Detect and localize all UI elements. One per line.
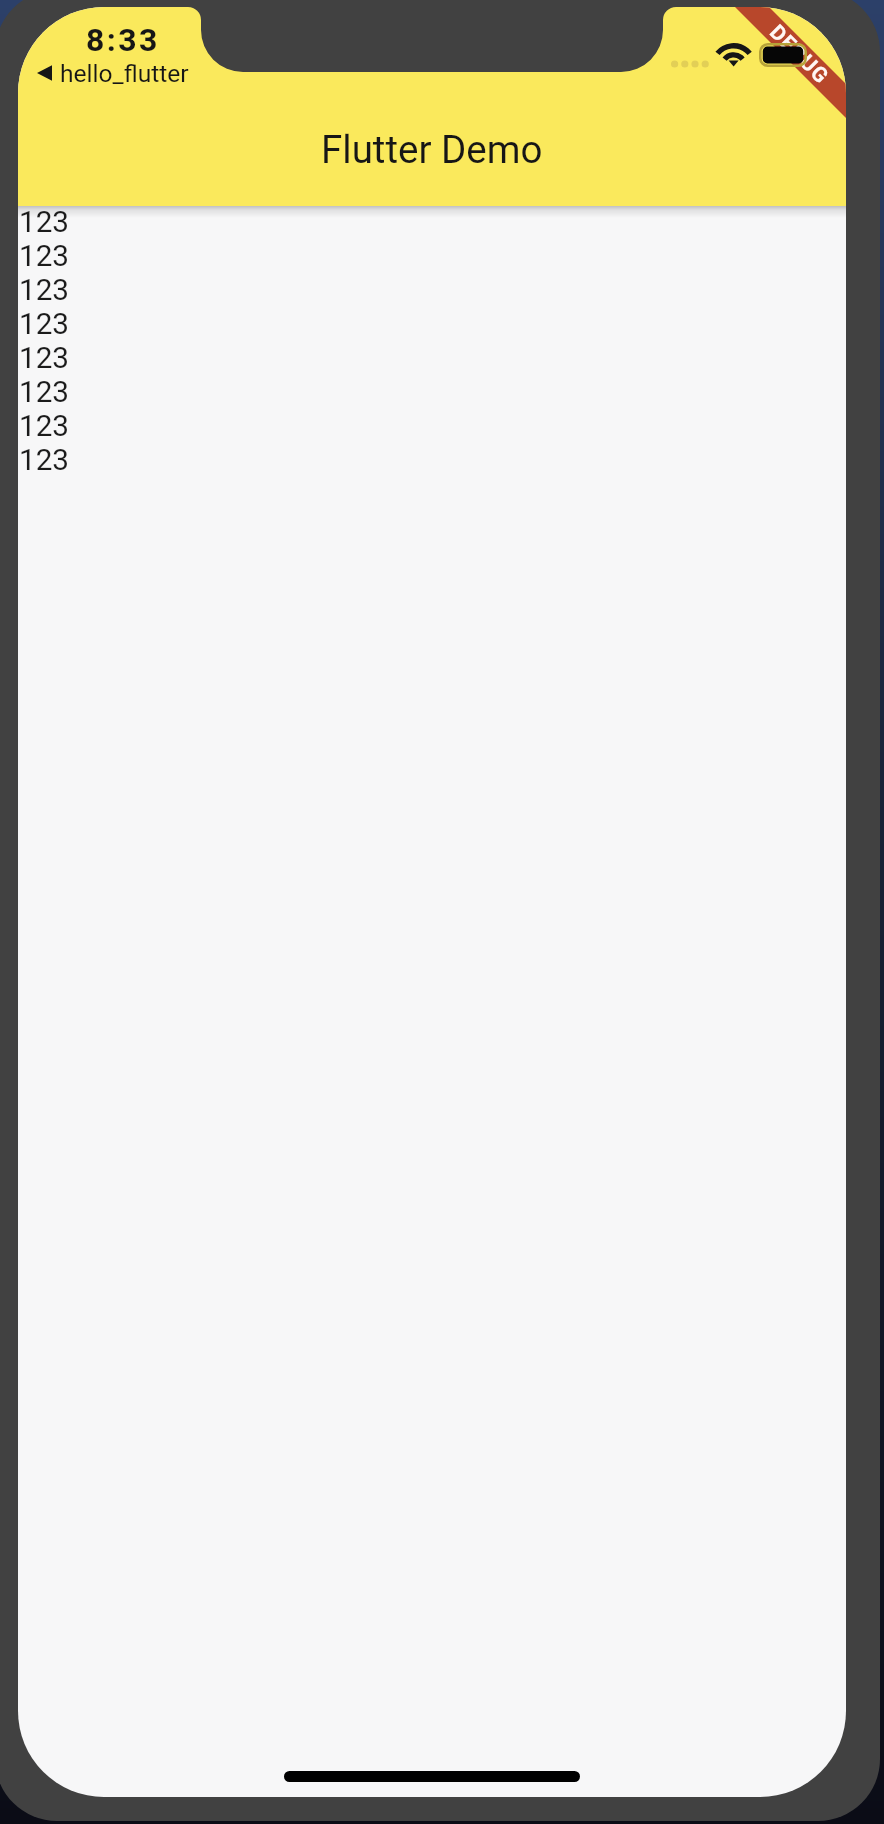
button[interactable]: 123: [18, 410, 846, 444]
other: Wi-Fi: [714, 41, 754, 69]
button[interactable]: 123: [18, 206, 846, 240]
staticText: hello_flutter: [60, 59, 189, 88]
staticText: 123: [19, 374, 70, 408]
button[interactable]: 123: [18, 240, 846, 274]
button[interactable]: 123: [18, 444, 846, 478]
staticText: 123: [19, 408, 70, 442]
staticText: Flutter Demo: [321, 127, 543, 172]
staticText: 123: [19, 272, 70, 306]
other: Battery: [759, 43, 807, 67]
button[interactable]: 123: [18, 376, 846, 410]
staticText: 123: [19, 442, 70, 476]
staticText: DEBUG: [765, 20, 834, 89]
staticText: 123: [19, 238, 70, 272]
button[interactable]: 123: [18, 308, 846, 342]
staticText: 8:33: [86, 21, 160, 59]
staticText: 123: [19, 340, 70, 374]
button[interactable]: Back: [37, 58, 189, 88]
other: Back: [37, 58, 52, 88]
staticText: 123: [19, 204, 70, 238]
button[interactable]: 123: [18, 274, 846, 308]
button[interactable]: 123: [18, 342, 846, 376]
staticText: 123: [19, 306, 70, 340]
